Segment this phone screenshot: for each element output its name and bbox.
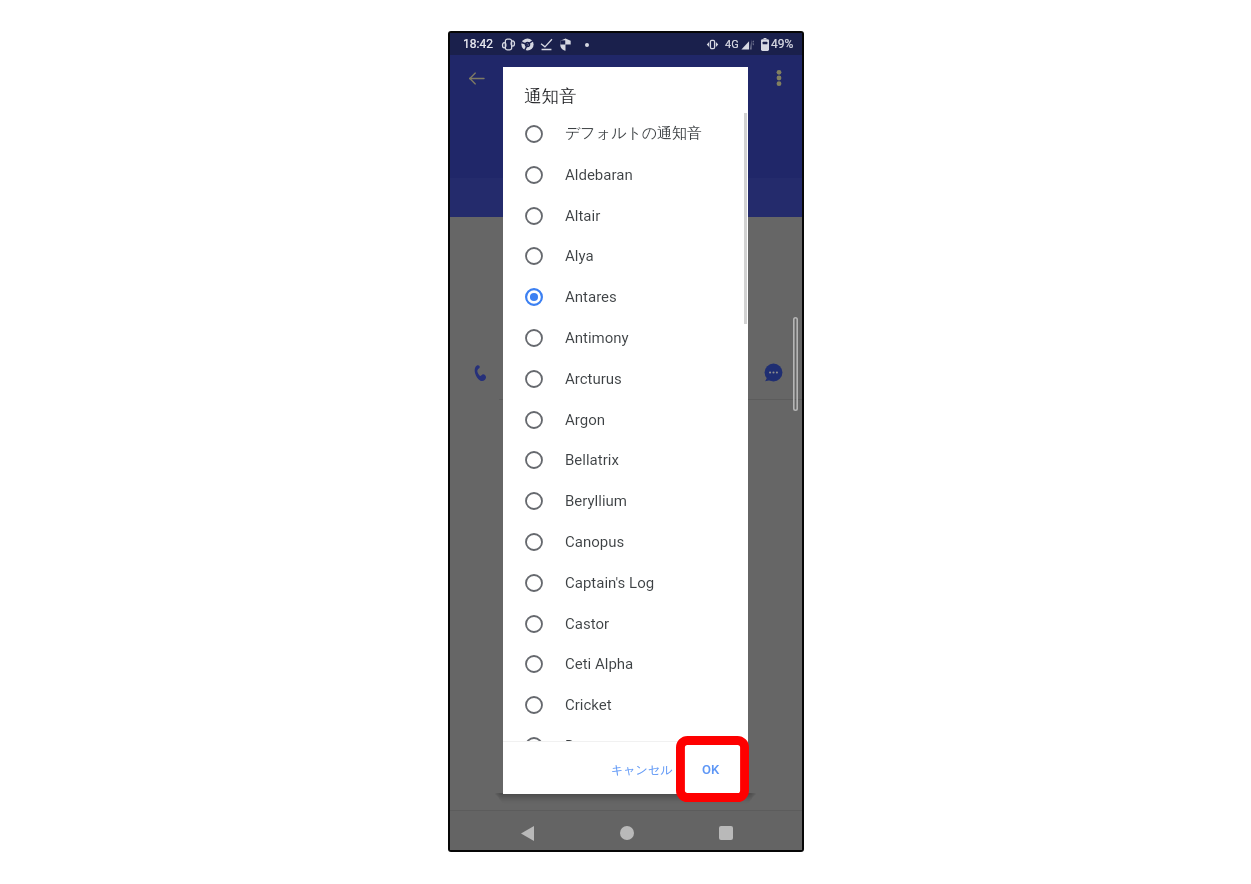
staticText: Antares [565, 288, 617, 306]
staticText: キャンセル [611, 762, 673, 777]
staticText: Canopus [565, 533, 625, 551]
staticText: 18:42 [463, 37, 493, 51]
staticText: Cricket [565, 696, 612, 714]
staticText: Castor [565, 615, 610, 633]
button[interactable]: Canopus [503, 521, 748, 562]
staticText: Argon [565, 411, 605, 429]
button[interactable]: Castor [503, 603, 748, 644]
button[interactable]: Home [611, 817, 643, 849]
button[interactable]: Back [461, 63, 491, 93]
staticText: Beryllium [565, 492, 627, 510]
button[interactable]: Argon [503, 399, 748, 440]
button[interactable]: Antares [503, 276, 748, 317]
staticText: Ceti Alpha [565, 655, 634, 673]
button[interactable]: Arcturus [503, 358, 748, 399]
button[interactable]: OK [687, 750, 735, 788]
button[interactable]: Ceti Alpha [503, 643, 748, 684]
button[interactable]: Alya [503, 235, 748, 276]
button[interactable]: More options [764, 63, 794, 93]
button[interactable]: デフォルトの通知音 [503, 113, 748, 154]
button[interactable]: キャンセル [601, 750, 683, 788]
button[interactable]: Captain's Log [503, 562, 748, 603]
button[interactable]: Beryllium [503, 480, 748, 521]
button[interactable]: Altair [503, 195, 748, 236]
staticText: Dawn [565, 737, 603, 741]
button[interactable]: Antimony [503, 317, 748, 358]
staticText: デフォルトの通知音 [565, 124, 703, 143]
staticText: Captain's Log [565, 574, 655, 592]
staticText: Altair [565, 207, 601, 225]
staticText: 49% [771, 37, 794, 51]
button[interactable]: Bellatrix [503, 439, 748, 480]
button[interactable]: Recents [710, 817, 742, 849]
staticText: Alya [565, 247, 594, 265]
staticText: Arcturus [565, 370, 622, 388]
button[interactable]: Dawn [503, 725, 748, 741]
staticText: Antimony [565, 329, 629, 347]
staticText: Bellatrix [565, 451, 619, 469]
staticText: 4G [725, 38, 739, 51]
button[interactable]: Back [511, 817, 543, 849]
staticText: 通知音 [524, 85, 577, 107]
button[interactable]: Aldebaran [503, 154, 748, 195]
button[interactable]: Cricket [503, 684, 748, 725]
staticText: Aldebaran [565, 166, 633, 184]
staticText: OK [702, 762, 720, 777]
